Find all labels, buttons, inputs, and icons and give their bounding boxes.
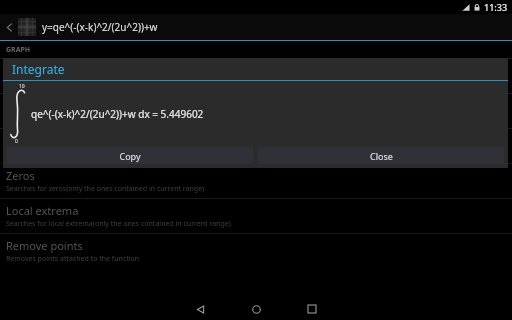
button[interactable]: Recent apps: [284, 298, 340, 320]
button[interactable]: Set thickness: [0, 59, 512, 93]
button[interactable]: Remove points: [0, 234, 512, 268]
button[interactable]: Graph preview: [18, 18, 36, 36]
staticText: Local extrema: [6, 203, 79, 218]
staticText: Sets color of the graph: [6, 114, 81, 124]
staticText: qe^(-(x-k)^2/(2u^2))+w dx = 5.449602: [31, 107, 204, 121]
staticText: Integrate: [12, 61, 65, 77]
staticText: 0: [15, 138, 18, 145]
button[interactable]: Home: [228, 298, 284, 320]
staticText: Removes points attached to the function: [6, 254, 140, 264]
staticText: GRAPH: [6, 45, 31, 55]
staticText: Close: [370, 150, 393, 162]
button[interactable]: Navigate up: [0, 18, 18, 36]
staticText: Set color: [6, 98, 52, 113]
button[interactable]: Intersections: [0, 129, 512, 163]
button[interactable]: Zeros: [0, 164, 512, 198]
button[interactable]: Local extrema: [0, 199, 512, 233]
button[interactable]: Back: [172, 298, 228, 320]
button[interactable]: Copy: [7, 147, 253, 164]
staticText: Searches for local extrema(only the ones…: [6, 219, 231, 229]
staticText: 11:33: [484, 1, 508, 13]
staticText: 10: [19, 83, 25, 90]
staticText: Sets line thickness of the graph: [6, 79, 109, 89]
staticText: Zeros: [6, 168, 35, 183]
staticText: Searches for zeros(only the ones contain…: [6, 184, 205, 194]
button[interactable]: Set color: [0, 94, 512, 128]
staticText: Copy: [119, 150, 141, 162]
staticText: y=qe^(-(x-k)^2/(2u^2))+w: [42, 20, 158, 34]
staticText: Set thickness: [6, 63, 74, 78]
staticText: Remove points: [6, 238, 83, 253]
button[interactable]: Close: [258, 147, 504, 164]
staticText: Searches for intersections(only the ones…: [6, 149, 195, 159]
staticText: Intersections: [6, 133, 74, 148]
